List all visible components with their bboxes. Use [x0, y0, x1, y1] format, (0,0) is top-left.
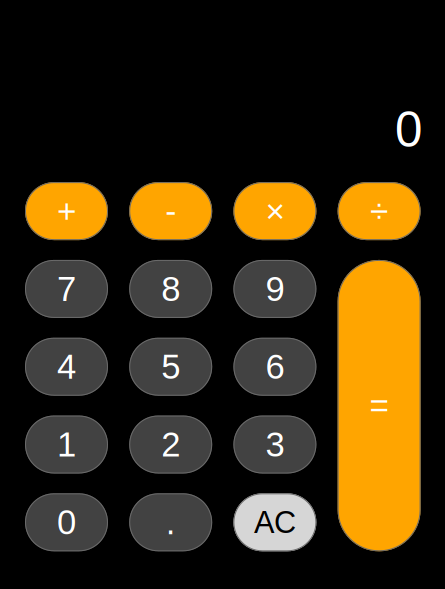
- button[interactable]: 3: [233, 415, 316, 473]
- button[interactable]: 6: [233, 338, 316, 396]
- staticText: .: [166, 503, 176, 542]
- button[interactable]: 9: [233, 260, 316, 318]
- staticText: 5: [161, 347, 180, 386]
- staticText: AC: [254, 505, 296, 539]
- button[interactable]: 7: [25, 260, 108, 318]
- staticText: 2: [161, 425, 180, 464]
- staticText: 9: [265, 269, 284, 308]
- staticText: 0: [395, 102, 422, 157]
- button[interactable]: Decimal point: [129, 493, 212, 551]
- staticText: +: [57, 192, 76, 230]
- button[interactable]: Multiply: [233, 182, 316, 240]
- button[interactable]: Add: [25, 182, 108, 240]
- button[interactable]: 0: [25, 493, 108, 551]
- staticText: 1: [57, 425, 76, 464]
- staticText: ×: [265, 192, 284, 230]
- staticText: ÷: [370, 192, 388, 230]
- staticText: =: [370, 387, 389, 424]
- staticText: 4: [57, 347, 76, 386]
- button[interactable]: Equals: [338, 260, 421, 551]
- staticText: 6: [265, 347, 284, 386]
- staticText: 3: [265, 425, 284, 464]
- staticText: 7: [57, 269, 76, 308]
- button[interactable]: AC: [233, 493, 316, 551]
- button[interactable]: Subtract: [129, 182, 212, 240]
- button[interactable]: 1: [25, 415, 108, 473]
- button[interactable]: 2: [129, 415, 212, 473]
- button[interactable]: 5: [129, 338, 212, 396]
- staticText: 0: [57, 503, 76, 542]
- button[interactable]: 4: [25, 338, 108, 396]
- button[interactable]: 8: [129, 260, 212, 318]
- staticText: 8: [161, 269, 180, 308]
- button[interactable]: Divide: [338, 182, 421, 240]
- staticText: -: [165, 192, 176, 230]
